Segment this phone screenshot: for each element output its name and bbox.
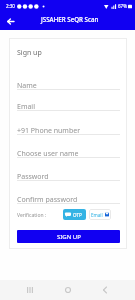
button[interactable]: OTP: [63, 209, 86, 220]
staticText: 67%: [118, 3, 127, 9]
staticText: SIGN UP: [57, 233, 81, 241]
staticText: Password: [17, 172, 49, 182]
staticText: Verification :: [17, 212, 47, 219]
staticText: Name: [17, 81, 37, 91]
button[interactable]: Email: [17, 90, 120, 111]
staticText: Email: [17, 102, 35, 112]
staticText: JSSAHER SeQR Scan: [41, 15, 99, 23]
button[interactable]: Confirm password: [17, 181, 120, 204]
button[interactable]: Choose user name: [17, 135, 120, 158]
button[interactable]: Password: [17, 158, 120, 181]
button[interactable]: Email: [89, 209, 111, 220]
staticText: OTP: [73, 212, 82, 218]
button[interactable]: Home: [60, 282, 76, 298]
button[interactable]: Name: [17, 56, 120, 90]
staticText: Confirm password: [17, 195, 78, 205]
staticText: Email: [91, 212, 103, 218]
button[interactable]: Recent apps: [22, 282, 38, 298]
staticText: Sign up: [17, 48, 42, 58]
staticText: Choose user name: [17, 149, 79, 159]
staticText: +91 Phone number: [17, 126, 81, 136]
button[interactable]: SIGN UP: [17, 230, 120, 243]
button[interactable]: Back: [3, 14, 17, 28]
button[interactable]: Back: [97, 282, 113, 298]
button[interactable]: +91 Phone number: [17, 111, 120, 135]
staticText: 2:30: [6, 3, 15, 9]
